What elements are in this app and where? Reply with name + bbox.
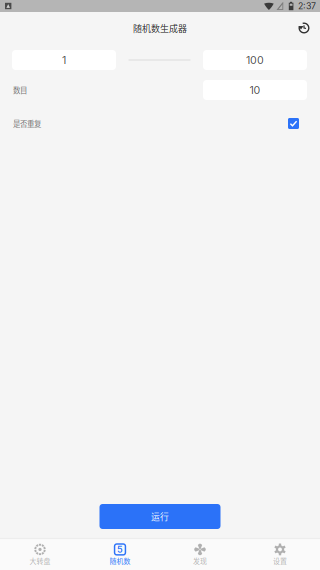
button[interactable]: 大转盘 <box>0 539 80 570</box>
staticText: 大转盘 <box>29 556 50 566</box>
staticText: 发现 <box>193 556 207 566</box>
button[interactable]: Allow repeats <box>288 118 299 129</box>
staticText: 100 <box>246 53 264 66</box>
button[interactable]: 发现 <box>160 539 240 570</box>
staticText: 2:37 <box>298 1 316 11</box>
staticText: 是否重复 <box>13 118 41 129</box>
button[interactable]: History <box>288 12 320 44</box>
staticText: 10 <box>249 83 260 96</box>
button[interactable]: 5 <box>80 539 160 570</box>
button[interactable]: 运行 <box>99 504 220 529</box>
staticText: 1 <box>62 53 66 66</box>
staticText: 随机数生成器 <box>133 21 187 34</box>
staticText: 数目 <box>13 85 27 95</box>
staticText: 运行 <box>151 510 169 523</box>
button[interactable]: 设置 <box>240 539 320 570</box>
staticText: 5 <box>117 544 123 555</box>
staticText: 设置 <box>273 556 287 566</box>
staticText: 随机数 <box>109 556 130 566</box>
